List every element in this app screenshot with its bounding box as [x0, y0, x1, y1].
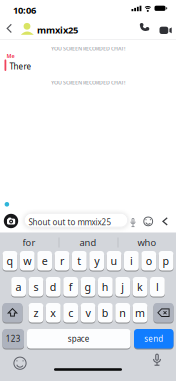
- staticText: t: [77, 254, 81, 268]
- button[interactable]: send: [134, 329, 173, 349]
- button[interactable]: 123: [2, 329, 24, 349]
- button[interactable]: More: [159, 214, 171, 227]
- button[interactable]: who: [118, 234, 176, 251]
- button[interactable]: r: [55, 251, 69, 271]
- staticText: k: [137, 280, 143, 294]
- staticText: who: [137, 236, 156, 249]
- button[interactable]: n: [115, 303, 130, 323]
- button[interactable]: t: [72, 251, 87, 271]
- button[interactable]: b: [98, 303, 113, 323]
- staticText: u: [110, 254, 117, 268]
- button[interactable]: for: [0, 234, 58, 251]
- button[interactable]: f: [63, 277, 78, 297]
- staticText: YOU SCREEN RECORDED CHAT!: [51, 79, 125, 86]
- staticText: j: [121, 280, 124, 294]
- button[interactable]: p: [159, 251, 173, 271]
- staticText: q: [6, 254, 13, 268]
- button[interactable]: mmxix25 profile: [17, 19, 81, 39]
- button[interactable]: s: [28, 277, 43, 297]
- staticText: 10:06: [13, 4, 36, 16]
- button[interactable]: h: [98, 277, 113, 297]
- staticText: space: [68, 333, 90, 344]
- button[interactable]: Video call: [158, 24, 173, 36]
- staticText: o: [146, 254, 152, 268]
- button[interactable]: j: [115, 277, 130, 297]
- staticText: v: [85, 306, 90, 320]
- button[interactable]: v: [81, 303, 95, 323]
- staticText: 123: [6, 333, 21, 344]
- button[interactable]: Emoji: [12, 355, 28, 371]
- staticText: l: [156, 280, 159, 294]
- staticText: There: [9, 61, 31, 72]
- button[interactable]: g: [81, 277, 95, 297]
- button[interactable]: Chat text field: [23, 212, 129, 229]
- button[interactable]: Stickers: [142, 215, 154, 228]
- button[interactable]: Voice note: [128, 214, 138, 228]
- button[interactable]: Delete: [153, 303, 173, 323]
- button[interactable]: o: [141, 251, 156, 271]
- button[interactable]: d: [46, 277, 61, 297]
- button[interactable]: e: [37, 251, 52, 271]
- button[interactable]: Call: [137, 21, 151, 35]
- staticText: x: [50, 306, 56, 320]
- button[interactable]: m: [133, 303, 147, 323]
- staticText: n: [119, 306, 126, 320]
- button[interactable]: and: [59, 234, 117, 251]
- button[interactable]: x: [46, 303, 61, 323]
- button[interactable]: w: [20, 251, 35, 271]
- button[interactable]: c: [63, 303, 78, 323]
- staticText: for: [22, 236, 35, 249]
- button[interactable]: k: [133, 277, 147, 297]
- staticText: b: [102, 306, 109, 320]
- button[interactable]: l: [150, 277, 165, 297]
- button[interactable]: a: [11, 277, 26, 297]
- button[interactable]: z: [28, 303, 43, 323]
- staticText: i: [130, 254, 133, 268]
- staticText: and: [79, 236, 96, 249]
- staticText: h: [102, 280, 109, 294]
- staticText: c: [68, 306, 73, 320]
- staticText: g: [84, 280, 91, 294]
- staticText: p: [163, 254, 170, 268]
- staticText: d: [50, 280, 57, 294]
- button[interactable]: i: [124, 251, 139, 271]
- staticText: r: [60, 254, 64, 268]
- button[interactable]: u: [107, 251, 121, 271]
- button[interactable]: q: [2, 251, 17, 271]
- staticText: y: [94, 254, 99, 268]
- staticText: mmxix25: [37, 24, 78, 36]
- staticText: Me: [6, 52, 14, 59]
- staticText: f: [69, 280, 73, 294]
- staticText: w: [23, 254, 31, 268]
- button[interactable]: Shift: [2, 303, 22, 323]
- button[interactable]: Dictation: [149, 350, 165, 367]
- staticText: Shout out to mmxix25: [28, 217, 111, 227]
- staticText: z: [33, 306, 38, 320]
- staticText: m: [135, 306, 145, 320]
- staticText: e: [42, 254, 48, 268]
- staticText: a: [16, 280, 22, 294]
- button[interactable]: y: [89, 251, 104, 271]
- button[interactable]: Camera: [3, 213, 19, 229]
- staticText: s: [33, 280, 38, 294]
- button[interactable]: space: [27, 329, 130, 349]
- staticText: send: [144, 333, 163, 344]
- staticText: YOU SCREEN RECORDED CHAT!: [51, 45, 125, 52]
- button[interactable]: Back: [3, 20, 16, 37]
